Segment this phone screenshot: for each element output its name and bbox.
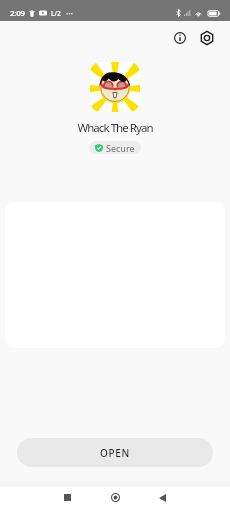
button[interactable]: About this app <box>168 26 192 50</box>
staticText: Whack The Ryan <box>77 120 153 136</box>
staticText: L/2 <box>51 9 61 18</box>
button[interactable]: Back <box>139 487 186 508</box>
button[interactable]: OPEN <box>17 438 213 467</box>
button[interactable]: Home <box>91 487 139 508</box>
button[interactable]: Secure <box>89 141 141 154</box>
staticText: 2:09 <box>10 8 25 19</box>
staticText: OPEN <box>100 446 131 460</box>
button[interactable]: Recent apps <box>43 487 91 508</box>
button[interactable]: Settings <box>195 26 219 50</box>
staticText: Secure <box>106 142 135 154</box>
